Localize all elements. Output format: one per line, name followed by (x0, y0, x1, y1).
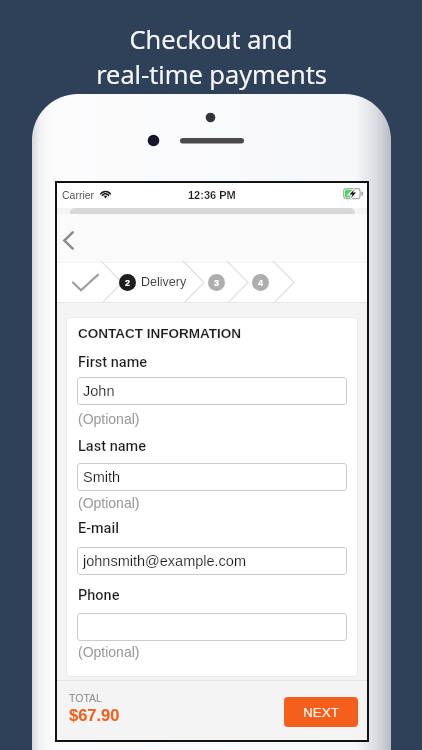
staticText: Delivery (141, 275, 187, 289)
button[interactable]: NEXT (284, 697, 358, 727)
button[interactable]: John (77, 377, 347, 405)
button[interactable]: 4 (252, 274, 269, 291)
staticText: Phone (78, 587, 120, 604)
staticText: 4 (258, 278, 264, 288)
staticText: 2 (125, 278, 131, 288)
staticText: Smith (83, 469, 121, 485)
staticText: Carrier (62, 189, 95, 201)
staticText: real-time payments (96, 57, 327, 92)
staticText: John (83, 383, 115, 399)
staticText: 3 (214, 278, 220, 288)
staticText: 12:36 PM (188, 189, 236, 201)
staticText: NEXT (303, 705, 340, 720)
staticText: First name (78, 354, 148, 371)
staticText: (Optional) (78, 411, 140, 427)
staticText: johnsmith@example.com (83, 553, 247, 569)
button[interactable]: johnsmith@example.com (77, 547, 347, 575)
staticText: (Optional) (78, 644, 140, 660)
staticText: TOTAL (69, 692, 102, 704)
staticText: (Optional) (78, 495, 140, 511)
button[interactable]: Smith (77, 463, 347, 491)
button[interactable]: 2 (119, 274, 136, 291)
button[interactable] (77, 613, 347, 641)
staticText: Last name (78, 438, 146, 455)
button[interactable]: Back (57, 226, 80, 254)
staticText: Checkout and (129, 22, 293, 57)
staticText: CONTACT INFORMATION (78, 326, 241, 341)
staticText: $67.90 (69, 706, 120, 724)
button[interactable]: 3 (208, 274, 225, 291)
staticText: E-mail (78, 520, 119, 537)
